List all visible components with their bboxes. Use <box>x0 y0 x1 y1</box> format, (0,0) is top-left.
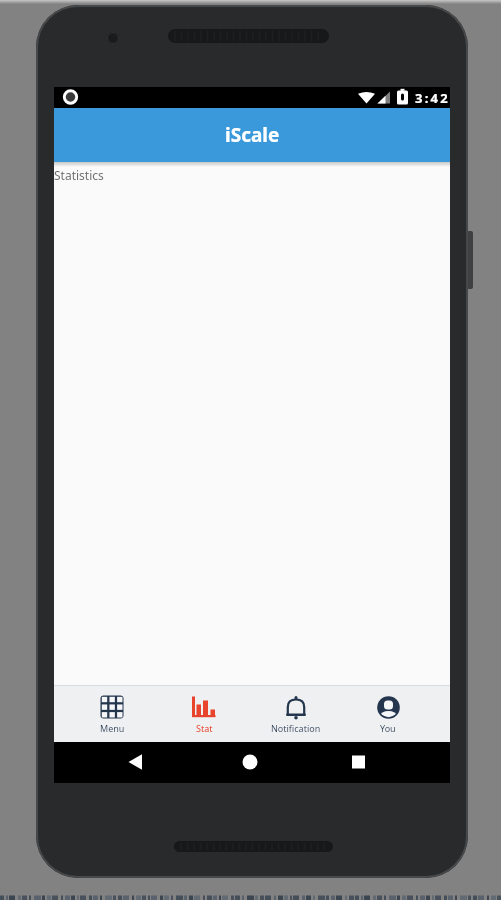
staticText: Statistics <box>54 167 104 183</box>
button[interactable]: Stat <box>158 686 250 742</box>
staticText: You <box>380 722 396 734</box>
button[interactable] <box>186 742 318 783</box>
staticText: Notification <box>271 722 321 734</box>
button[interactable] <box>318 742 450 783</box>
staticText: Menu <box>100 722 125 734</box>
staticText: 3:42 <box>415 89 450 107</box>
staticText: iScale <box>225 122 280 148</box>
button[interactable]: Notification <box>250 686 342 742</box>
button[interactable]: Menu <box>66 686 158 742</box>
staticText: Stat <box>196 722 213 734</box>
button[interactable]: You <box>342 686 434 742</box>
button[interactable] <box>54 742 186 783</box>
